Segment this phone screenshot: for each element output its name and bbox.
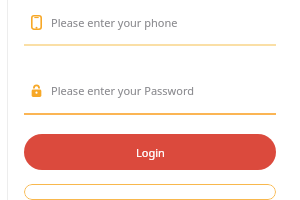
- other: Password: [31, 84, 42, 97]
- button[interactable]: Phone: [0, 0, 300, 44]
- button[interactable]: Password: [0, 78, 300, 102]
- button[interactable]: [24, 184, 276, 200]
- staticText: Login: [136, 145, 165, 160]
- staticText: Please enter your phone: [51, 15, 178, 30]
- staticText: Please enter your Password: [51, 83, 194, 98]
- button[interactable]: Login: [24, 134, 276, 170]
- other: Phone: [31, 15, 42, 30]
